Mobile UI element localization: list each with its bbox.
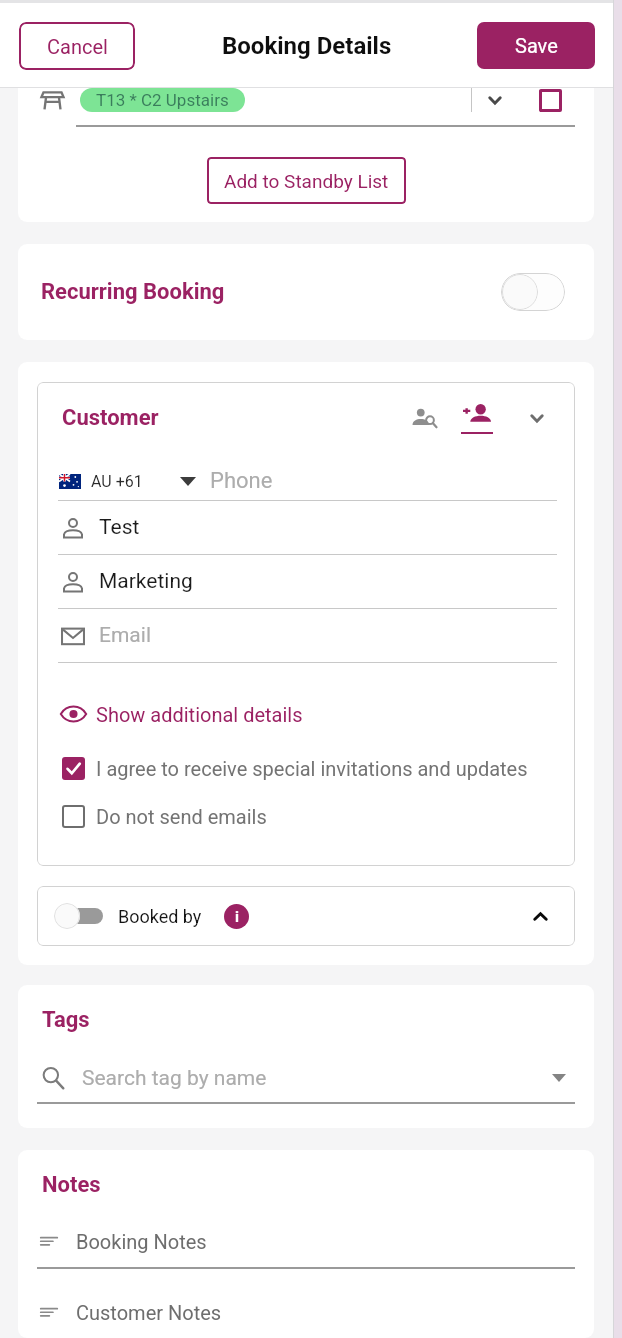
staticText: Tags <box>42 1007 90 1033</box>
button[interactable]: Collapse customer <box>517 398 557 438</box>
staticText: Booked by <box>118 906 202 927</box>
staticText: i <box>235 908 239 926</box>
button[interactable]: Customer Notes <box>37 1299 575 1325</box>
button[interactable]: Information <box>224 904 249 929</box>
button[interactable]: Booked by toggle <box>54 903 103 929</box>
button[interactable]: Booking Notes <box>37 1228 575 1254</box>
button[interactable]: Do not send emails <box>58 802 557 830</box>
staticText: AU +61 <box>91 472 143 491</box>
button[interactable]: Search customer <box>403 397 445 439</box>
button[interactable]: I agree to receive special invitations a… <box>58 754 557 782</box>
staticText: Save <box>515 34 558 57</box>
button[interactable]: Expand table <box>472 88 518 112</box>
button[interactable]: Select table <box>539 89 562 112</box>
staticText: Customer <box>62 405 159 431</box>
staticText: I agree to receive special invitations a… <box>96 757 528 780</box>
staticText: Test <box>99 515 140 540</box>
staticText: Add to Standby List <box>224 170 389 192</box>
staticText: Notes <box>42 1172 101 1198</box>
staticText: Phone <box>210 468 273 494</box>
staticText: Customer Notes <box>76 1301 222 1324</box>
staticText: Booking Notes <box>76 1230 207 1253</box>
button[interactable]: Add to Standby List <box>207 157 406 204</box>
staticText: Booking Details <box>222 32 392 60</box>
button[interactable]: Add customer <box>455 396 499 440</box>
staticText: Cancel <box>47 35 108 58</box>
button[interactable]: Collapse booked by <box>523 899 557 933</box>
staticText: T13 * C2 Upstairs <box>96 90 229 110</box>
staticText: Search tag by name <box>82 1066 267 1091</box>
staticText: Email <box>99 623 151 648</box>
staticText: Marketing <box>99 569 193 594</box>
staticText: Show additional details <box>96 703 303 726</box>
staticText: Do not send emails <box>96 805 267 828</box>
button[interactable]: Save <box>477 22 595 69</box>
button[interactable]: Recurring booking toggle <box>501 273 565 311</box>
button[interactable]: Show additional details <box>58 700 303 728</box>
staticText: Recurring Booking <box>41 279 225 305</box>
button[interactable]: Cancel <box>19 22 135 70</box>
